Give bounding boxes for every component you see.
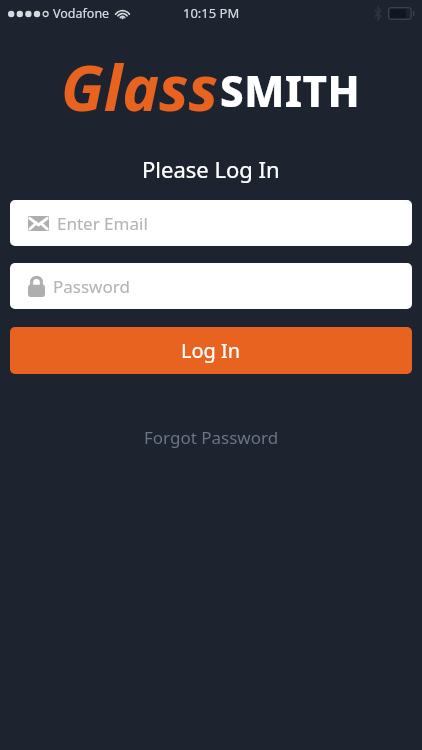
button[interactable]: Enter Email — [10, 200, 412, 246]
button[interactable]: Forgot Password — [134, 420, 289, 455]
staticText: 10:15 PM — [183, 4, 240, 22]
staticText: Please Log In — [142, 154, 280, 184]
staticText: Forgot Password — [144, 426, 279, 449]
staticText: SMITH — [220, 62, 361, 119]
staticText: Log In — [181, 337, 241, 364]
staticText: Enter Email — [57, 212, 148, 235]
button[interactable]: Log In — [10, 327, 412, 374]
staticText: Password — [53, 275, 130, 298]
staticText: Vodafone — [53, 5, 110, 22]
staticText: Glass — [61, 45, 218, 129]
button[interactable]: Password — [10, 263, 412, 309]
